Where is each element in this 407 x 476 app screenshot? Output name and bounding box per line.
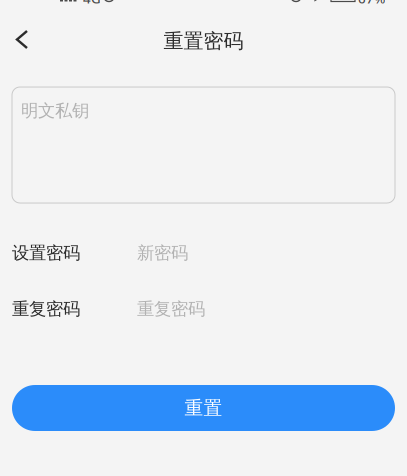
staticText: 4G	[83, 0, 101, 7]
staticText: 重置密码	[163, 29, 243, 53]
button[interactable]: 明文私钥	[12, 87, 395, 203]
staticText: 67%	[358, 0, 385, 7]
button[interactable]: 重复密码	[0, 295, 407, 323]
button[interactable]: 重置	[12, 385, 395, 431]
button[interactable]: Back	[0, 18, 44, 62]
button[interactable]: 设置密码	[0, 239, 407, 267]
staticText: 重复密码	[12, 298, 80, 320]
staticText: 明文私钥	[21, 100, 89, 121]
staticText: 设置密码	[12, 242, 80, 264]
staticText: 重置	[184, 396, 222, 419]
staticText: 重复密码	[137, 298, 205, 320]
staticText: 新密码	[137, 242, 188, 264]
